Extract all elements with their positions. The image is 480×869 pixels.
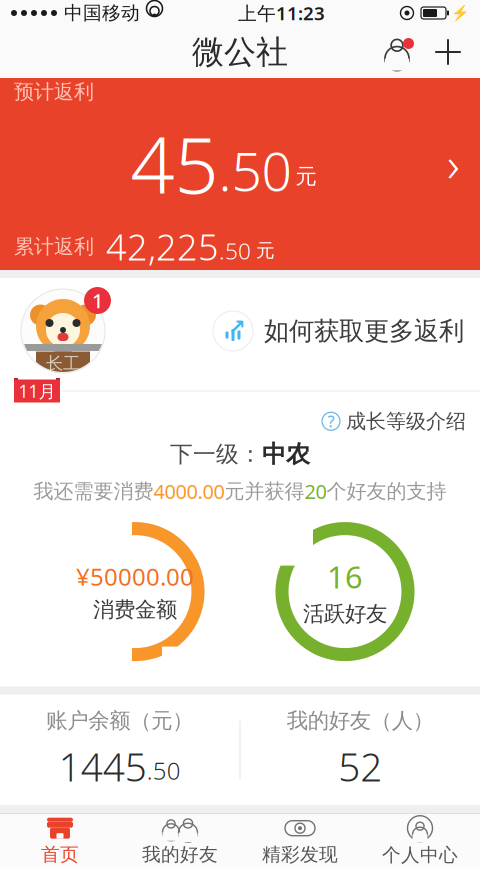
staticText: 个好友的支持 <box>326 479 446 504</box>
staticText: 16 <box>327 556 363 597</box>
staticText: 精彩发现 <box>262 843 338 866</box>
staticText: .50 <box>219 236 251 266</box>
staticText: 累计返利 <box>14 234 94 259</box>
staticText: 我的好友（人） <box>287 708 434 734</box>
staticText: 11月 <box>18 379 55 402</box>
staticText: 消费金额 <box>93 596 177 623</box>
staticText: ? <box>327 411 334 432</box>
button[interactable]: 精彩发现 <box>240 814 360 868</box>
staticText: 账户余额（元） <box>46 708 193 734</box>
button[interactable]: 我的好友 <box>120 814 240 868</box>
staticText: › <box>447 131 460 195</box>
staticText: 成长等级介绍 <box>346 409 466 434</box>
staticText: ⚡ <box>451 5 469 21</box>
staticText: 20 <box>304 478 326 505</box>
button[interactable]: 好友 <box>372 26 422 78</box>
button[interactable]: ? <box>322 406 480 437</box>
staticText: 我的好友 <box>142 843 218 866</box>
button[interactable]: 账户余额（元） <box>0 695 239 805</box>
staticText: 元 <box>295 163 316 189</box>
staticText: 上午11:23 <box>238 1 325 25</box>
staticText: 我还需要消费 <box>33 479 153 504</box>
staticText: ¥50000.00 <box>76 561 194 592</box>
staticText: 4000.00 <box>153 478 224 505</box>
staticText: 1 <box>92 287 103 314</box>
button[interactable]: 我的好友（人） <box>240 695 480 805</box>
staticText: 45 <box>130 112 218 215</box>
button[interactable]: 预计返利 <box>0 78 480 270</box>
button[interactable]: ↗ <box>213 305 480 357</box>
staticText: 个人中心 <box>382 844 458 867</box>
staticText: 元并获得 <box>224 479 304 504</box>
staticText: 微公社 <box>192 32 288 72</box>
staticText: 中农 <box>262 440 310 469</box>
staticText: 52 <box>338 741 382 792</box>
staticText: .50 <box>147 754 181 786</box>
button[interactable]: 个人中心 <box>360 814 480 868</box>
staticText: 预计返利 <box>14 79 94 104</box>
staticText: 长工 <box>46 353 80 374</box>
staticText: ↗ <box>228 315 246 339</box>
staticText: 下一级： <box>170 440 262 468</box>
staticText: 中国移动 <box>64 1 140 24</box>
staticText: 活跃好友 <box>303 601 387 627</box>
staticText: .50 <box>218 135 291 206</box>
button[interactable]: 首页 <box>0 814 120 868</box>
staticText: 1445 <box>59 741 147 792</box>
staticText: 42,225 <box>106 223 219 270</box>
staticText: 元 <box>256 239 275 262</box>
staticText: 首页 <box>41 843 79 866</box>
staticText: 如何获取更多返利 <box>264 315 464 346</box>
button[interactable]: 添加 <box>422 26 474 78</box>
